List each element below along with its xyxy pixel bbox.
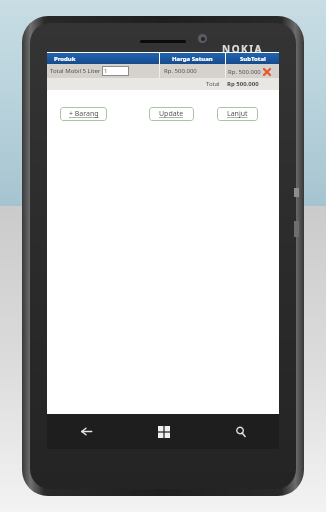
button[interactable]: Update	[149, 107, 194, 121]
button[interactable]: Search	[202, 414, 279, 449]
staticText: Rp 500.000	[227, 80, 259, 88]
staticText: Produk	[54, 55, 76, 63]
staticText: SubTotal	[240, 55, 266, 63]
button[interactable]: Start	[125, 414, 202, 449]
staticText: Harga Satuan	[172, 55, 213, 63]
staticText: + Barang	[69, 109, 99, 119]
button[interactable]: Back	[47, 414, 125, 449]
staticText: Update	[159, 109, 184, 119]
button[interactable]: + Barang	[60, 107, 107, 121]
button[interactable]: Hapus baris	[262, 67, 271, 76]
staticText: Rp. 500.000	[164, 67, 197, 75]
staticText: 1	[104, 67, 108, 75]
staticText: Lanjut	[227, 109, 248, 119]
staticText: NOKIA	[222, 42, 263, 56]
button[interactable]: Lanjut	[217, 107, 258, 121]
staticText: Total	[206, 80, 220, 88]
staticText: Total Mobil 5 Liter	[50, 67, 101, 75]
staticText: Rp. 500.000	[228, 68, 261, 76]
